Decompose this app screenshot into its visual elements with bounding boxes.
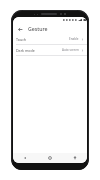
button[interactable]: Home xyxy=(37,153,62,163)
staticText: Touch xyxy=(16,37,27,42)
button[interactable]: Dark mode xyxy=(13,45,87,55)
button[interactable]: Touch xyxy=(13,34,87,44)
staticText: Dark mode xyxy=(16,48,35,53)
button[interactable]: Recents xyxy=(62,153,87,163)
staticText: Auto screen xyxy=(62,48,79,52)
staticText: Gesture xyxy=(28,25,48,32)
staticText: Enable xyxy=(69,37,79,41)
button[interactable]: Back xyxy=(13,153,37,163)
button[interactable]: Back xyxy=(16,25,24,33)
